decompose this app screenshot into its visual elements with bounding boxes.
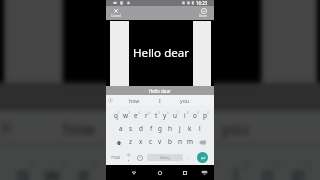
button[interactable]: m xyxy=(185,136,195,149)
button[interactable]: c xyxy=(146,136,156,149)
button[interactable]: Back xyxy=(126,165,141,180)
staticText: 2 xyxy=(128,111,130,115)
button[interactable]: , xyxy=(124,151,134,164)
staticText: w xyxy=(123,111,129,120)
other: Hide keyboard xyxy=(201,169,208,176)
button[interactable]: 6 xyxy=(159,157,190,180)
button[interactable]: 6 xyxy=(160,110,170,123)
button[interactable]: 4 xyxy=(100,157,131,180)
button[interactable]: l xyxy=(195,123,205,136)
button[interactable]: Home xyxy=(152,165,167,180)
button[interactable]: 1 xyxy=(7,157,38,180)
button[interactable]: I xyxy=(151,95,169,106)
button[interactable]: 8 xyxy=(180,110,190,123)
button[interactable]: you xyxy=(175,95,193,106)
button[interactable]: k xyxy=(185,123,195,136)
button[interactable]: v xyxy=(155,136,165,149)
button[interactable]: 2 xyxy=(121,110,131,123)
staticText: y xyxy=(163,111,167,120)
button[interactable]: 9 xyxy=(252,157,283,180)
button[interactable]: b xyxy=(165,136,175,149)
staticText: o xyxy=(261,160,274,180)
staticText: q xyxy=(16,160,29,180)
button[interactable]: you xyxy=(205,110,261,145)
button[interactable]: Hide keyboard xyxy=(198,165,211,180)
staticText: 0 xyxy=(207,111,209,115)
staticText: 3 xyxy=(138,111,140,115)
staticText: 4 xyxy=(148,111,150,115)
button[interactable]: I xyxy=(131,110,187,145)
button[interactable]: 2 xyxy=(38,157,69,180)
button[interactable]: 3 xyxy=(131,110,141,123)
staticText: 6 xyxy=(181,160,187,172)
staticText: p xyxy=(292,160,305,180)
button[interactable]: Done xyxy=(195,6,212,20)
button[interactable]: j xyxy=(175,123,185,136)
other: Emoji xyxy=(137,155,143,161)
staticText: e xyxy=(78,160,91,180)
button[interactable]: g xyxy=(155,123,165,136)
staticText: I xyxy=(159,97,161,104)
button[interactable]: 0 xyxy=(200,110,210,123)
staticText: ☺ xyxy=(127,153,131,157)
staticText: 6 xyxy=(167,111,169,115)
button[interactable]: 9 xyxy=(190,110,200,123)
button[interactable]: a xyxy=(116,123,126,136)
other: Back xyxy=(131,170,137,176)
button[interactable]: h xyxy=(165,123,175,136)
button[interactable]: Malay xyxy=(147,154,183,161)
staticText: you xyxy=(221,117,249,138)
staticText: 8 xyxy=(187,111,189,115)
staticText: 5 xyxy=(153,160,159,172)
other: More suggestions xyxy=(108,98,113,103)
button[interactable]: 1 xyxy=(111,110,121,123)
staticText: g xyxy=(158,124,162,133)
staticText: z xyxy=(129,137,133,146)
button[interactable]: 5 xyxy=(151,110,161,123)
button[interactable]: Enter xyxy=(197,152,208,163)
button[interactable]: 7 xyxy=(170,110,180,123)
button[interactable]: More suggestions xyxy=(0,110,16,145)
staticText: , xyxy=(128,156,130,163)
staticText: r xyxy=(112,160,122,180)
button[interactable]: Cancel xyxy=(107,6,124,20)
staticText: r xyxy=(145,111,148,120)
button[interactable]: Backspace xyxy=(195,136,210,149)
button[interactable]: z xyxy=(126,136,136,149)
staticText: l xyxy=(199,124,201,133)
staticText: . xyxy=(188,154,190,161)
staticText: h xyxy=(168,124,172,133)
button[interactable]: Recents xyxy=(177,165,192,180)
button[interactable]: how xyxy=(50,110,106,145)
button[interactable]: d xyxy=(136,123,146,136)
staticText: c xyxy=(149,137,153,146)
button[interactable]: Shift xyxy=(111,136,126,149)
button[interactable]: s xyxy=(126,123,136,136)
staticText: n xyxy=(178,137,182,146)
button[interactable]: 5 xyxy=(131,157,162,180)
staticText: d xyxy=(139,124,143,133)
button[interactable]: n xyxy=(175,136,185,149)
staticText: u xyxy=(173,111,177,120)
button[interactable]: 3 xyxy=(69,157,100,180)
staticText: j xyxy=(179,124,181,133)
button[interactable]: Emoji xyxy=(135,151,145,164)
button[interactable]: More suggestions xyxy=(106,95,114,106)
button[interactable]: x xyxy=(136,136,146,149)
staticText: Hello dear xyxy=(149,88,171,94)
button[interactable]: f xyxy=(146,123,156,136)
button[interactable]: 0 xyxy=(283,157,314,180)
staticText: you xyxy=(180,97,189,104)
button[interactable]: . xyxy=(185,151,193,164)
button[interactable]: 4 xyxy=(141,110,151,123)
staticText: ?123 xyxy=(111,155,121,161)
button[interactable]: ?123 xyxy=(109,151,122,164)
staticText: 4 xyxy=(122,160,128,172)
staticText: q xyxy=(114,111,118,120)
button[interactable]: 7 xyxy=(190,157,221,180)
button[interactable]: how xyxy=(125,95,143,106)
